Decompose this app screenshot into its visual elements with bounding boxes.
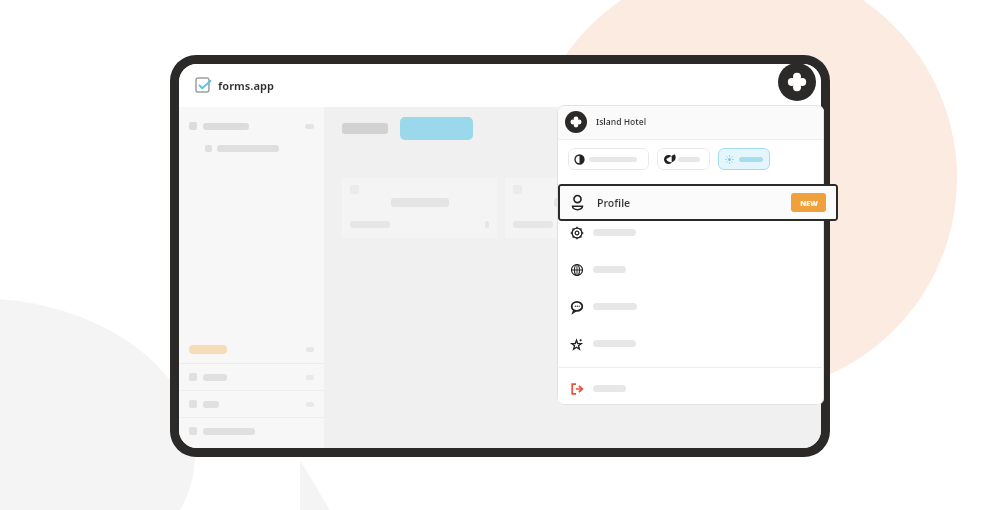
button[interactable]: Island Hotel	[557, 105, 824, 139]
button[interactable]: Menu item	[557, 372, 824, 405]
staticText: NEW	[800, 198, 818, 208]
button[interactable]	[505, 178, 660, 238]
button[interactable]: Menu item	[557, 288, 824, 325]
button[interactable]: Account	[778, 63, 816, 101]
button[interactable]	[342, 178, 497, 238]
button[interactable]: Theme option	[568, 148, 649, 170]
button[interactable]: Profile	[558, 184, 838, 221]
staticText: Island Hotel	[596, 116, 647, 128]
button[interactable]: forms.app	[195, 77, 274, 94]
button[interactable]: Theme option	[718, 148, 770, 170]
button[interactable]: Theme option	[657, 148, 710, 170]
button[interactable]: Menu item	[557, 251, 824, 288]
staticText: Profile	[597, 196, 631, 210]
staticText: forms.app	[218, 78, 274, 93]
button[interactable]: Menu item	[557, 214, 824, 251]
button[interactable]: Menu item	[557, 325, 824, 362]
button[interactable]	[668, 178, 821, 238]
